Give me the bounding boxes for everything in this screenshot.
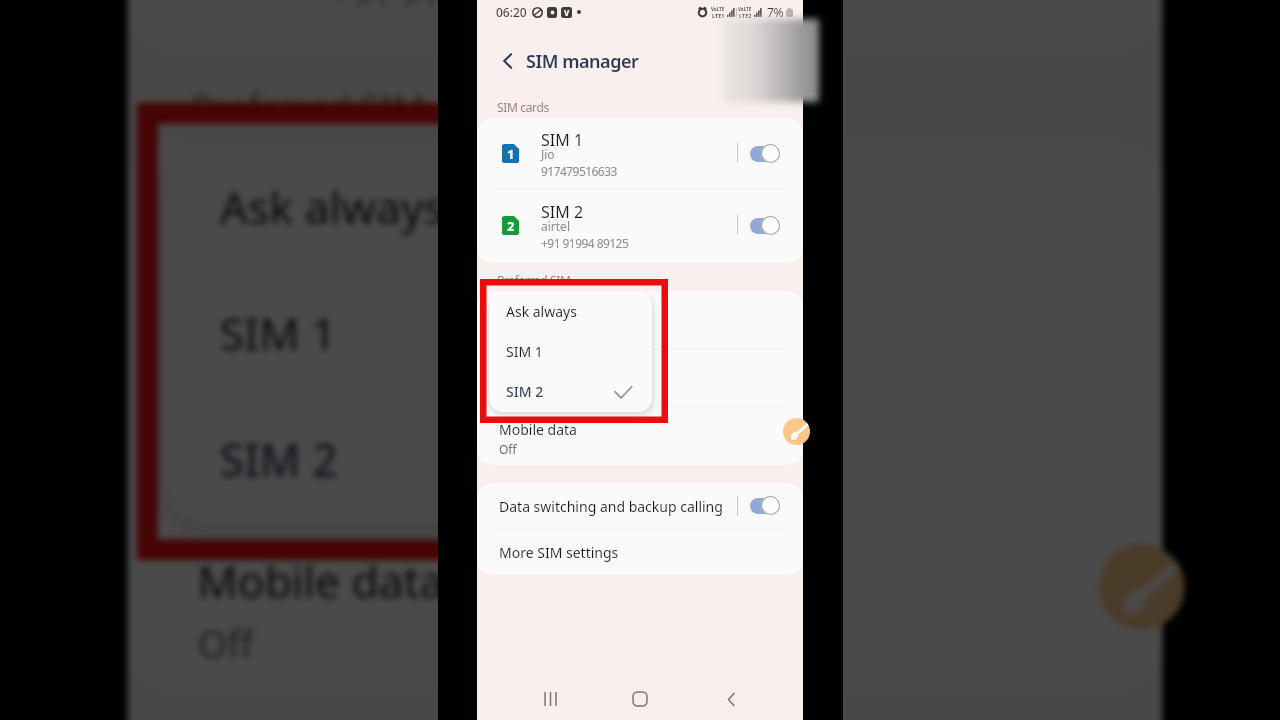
staticText: +91 91994 89125	[331, 0, 610, 14]
button[interactable]: Data switching and backup calling	[477, 483, 803, 529]
button[interactable]: Recents	[532, 681, 568, 717]
staticText: SIM 1	[541, 129, 584, 151]
staticText: Jio	[541, 146, 555, 162]
staticText: LTE1	[712, 12, 725, 19]
staticText: SIM manager	[526, 49, 639, 74]
button[interactable]: SIM 2	[489, 371, 652, 411]
staticText: Ask always	[506, 302, 577, 321]
button[interactable]: Mobile data	[128, 506, 1162, 693]
button[interactable]: Back	[713, 681, 749, 717]
staticText: SIM 2	[220, 430, 340, 490]
staticText: Preferred SIM	[497, 272, 571, 288]
button[interactable]	[750, 144, 781, 164]
staticText: More SIM settings	[499, 543, 619, 562]
button[interactable]: More SIM settings	[477, 529, 803, 575]
staticText: SIM 1	[220, 303, 337, 363]
button[interactable]: SIM 1	[166, 268, 683, 395]
staticText: SIM 1	[506, 342, 543, 361]
staticText: 7%	[767, 4, 784, 20]
staticText: LTE2	[739, 12, 752, 19]
staticText: SIM 2	[541, 201, 584, 223]
staticText: Data switching and backup calling	[499, 497, 723, 516]
staticText: airtel	[541, 218, 570, 234]
button[interactable]: Edit	[783, 418, 810, 445]
button[interactable]: Calls	[477, 291, 803, 349]
staticText: SIM 2	[197, 436, 299, 487]
button[interactable]: 2	[128, 0, 1162, 49]
button[interactable]: Edit	[1099, 544, 1185, 630]
button[interactable]: Text messages	[128, 325, 1162, 506]
staticText: Off	[197, 617, 255, 668]
staticText: Ask always	[220, 176, 445, 236]
staticText: Calls	[499, 305, 530, 324]
button[interactable]: Ask always	[166, 141, 683, 268]
staticText: 1	[507, 145, 515, 163]
staticText: Preferred SIM	[191, 81, 426, 131]
staticText: Off	[499, 441, 517, 457]
button[interactable]	[750, 216, 781, 236]
button[interactable]: Home	[622, 681, 658, 717]
button[interactable]: SIM 2	[166, 395, 683, 522]
button[interactable]: 1	[477, 118, 803, 190]
staticText: Calls	[197, 185, 296, 246]
button[interactable]: Mobile data	[477, 406, 803, 465]
staticText: 917479516633	[541, 163, 617, 179]
staticText: VoLTE	[711, 6, 725, 12]
staticText: V	[564, 7, 570, 18]
staticText: 06:20	[496, 4, 527, 20]
staticText: SIM 2	[499, 384, 531, 400]
button[interactable]: Text messages	[477, 349, 803, 406]
staticText: +91 91994 89125	[541, 235, 629, 251]
button[interactable]: Calls	[128, 141, 1162, 325]
staticText: 2	[507, 217, 515, 235]
staticText: Mobile data	[197, 550, 445, 611]
staticText: SIM cards	[497, 99, 549, 115]
button[interactable]: Ask always	[489, 291, 652, 331]
button[interactable]: Back	[493, 46, 523, 76]
button[interactable]: SIM 1	[489, 331, 652, 371]
staticText: Text messages	[197, 369, 502, 430]
staticText: Mobile data	[499, 420, 577, 439]
staticText: VoLTE	[738, 6, 752, 12]
staticText: SIM 2	[506, 382, 544, 401]
button[interactable]	[750, 496, 781, 516]
button[interactable]: 2	[477, 190, 803, 262]
